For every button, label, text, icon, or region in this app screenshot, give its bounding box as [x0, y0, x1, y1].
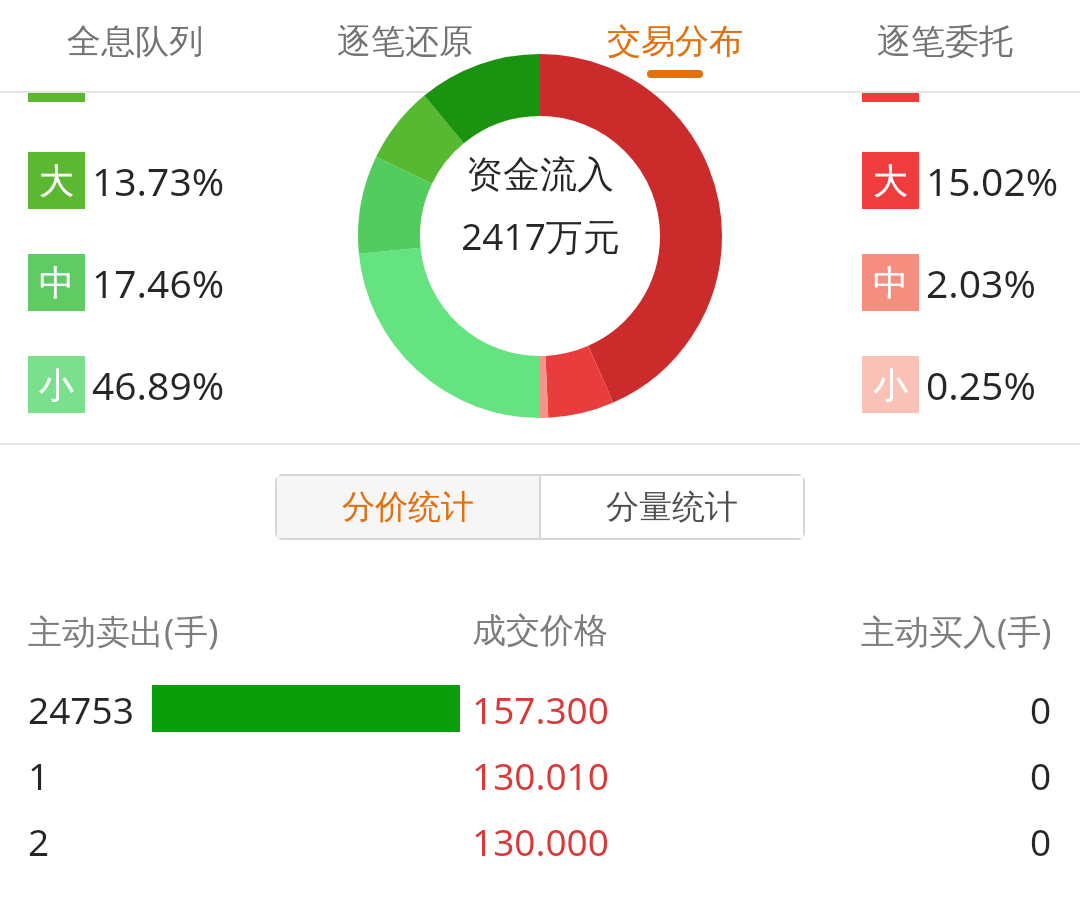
button[interactable]: 1 — [0, 742, 1080, 808]
button[interactable]: 大 — [28, 152, 225, 209]
staticText: 1 — [28, 750, 50, 800]
staticText: 2.03% — [926, 256, 1036, 309]
button[interactable]: 小 — [28, 356, 225, 413]
staticText: 24753 — [28, 684, 134, 734]
button[interactable]: 24753 — [0, 676, 1080, 742]
staticText: 0.25% — [926, 358, 1036, 411]
staticText: 主动卖出(手) — [28, 608, 219, 652]
staticText: 17.46% — [92, 256, 225, 309]
staticText: 2417万元 — [461, 210, 620, 261]
staticText: 交易分布 — [607, 20, 743, 63]
staticText: 分量统计 — [606, 486, 738, 528]
staticText: 中 — [873, 261, 908, 305]
staticText: 分价统计 — [342, 486, 474, 528]
staticText: 0 — [1030, 750, 1052, 800]
staticText: 逐笔委托 — [877, 20, 1013, 63]
button[interactable]: 大 — [862, 152, 1059, 209]
staticText: 中 — [39, 261, 74, 305]
button[interactable]: 逐笔还原 — [270, 0, 540, 92]
staticText: 资金流入 — [466, 151, 614, 198]
staticText: 46.89% — [92, 358, 225, 411]
button[interactable]: 2 — [0, 808, 1080, 874]
button[interactable]: 中 — [862, 254, 1036, 311]
button[interactable]: 交易分布 — [540, 0, 810, 92]
button[interactable]: 全息队列 — [0, 0, 270, 92]
staticText: 大 — [39, 159, 74, 203]
button[interactable]: 中 — [28, 254, 225, 311]
staticText: 0 — [1030, 816, 1052, 866]
staticText: 130.010 — [472, 750, 609, 800]
button[interactable]: 分价统计 — [277, 476, 539, 538]
staticText: 0 — [1030, 684, 1052, 734]
staticText: 小 — [873, 363, 908, 407]
staticText: 小 — [39, 363, 74, 407]
staticText: 全息队列 — [67, 20, 203, 63]
staticText: 大 — [873, 159, 908, 203]
staticText: 157.300 — [472, 684, 609, 734]
staticText: 2 — [28, 816, 50, 866]
staticText: 13.73% — [92, 154, 225, 207]
staticText: 成交价格 — [472, 609, 608, 652]
staticText: 逐笔还原 — [337, 20, 473, 63]
staticText: 130.000 — [472, 816, 609, 866]
staticText: 主动买入(手) — [861, 608, 1052, 652]
button[interactable]: 小 — [862, 356, 1036, 413]
staticText: 15.02% — [926, 154, 1059, 207]
button[interactable]: 分量统计 — [541, 476, 803, 538]
button[interactable]: 逐笔委托 — [810, 0, 1080, 92]
